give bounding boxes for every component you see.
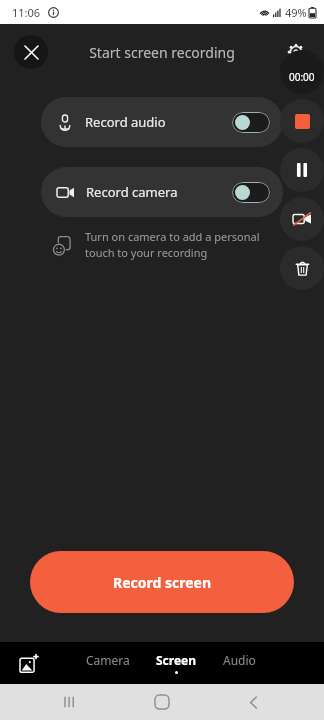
button[interactable]: Pause bbox=[280, 148, 324, 192]
staticText: Record screen bbox=[113, 573, 212, 592]
button[interactable]: Record camera bbox=[41, 167, 283, 217]
staticText: 49% bbox=[285, 5, 307, 20]
staticText: Camera bbox=[86, 652, 130, 668]
button[interactable]: Record audio bbox=[41, 97, 283, 147]
button[interactable]: Toggle bbox=[232, 182, 270, 203]
button[interactable]: Add media bbox=[14, 648, 44, 678]
button[interactable]: Back bbox=[238, 687, 268, 717]
button[interactable]: Toggle bbox=[232, 112, 270, 133]
button[interactable]: Screen bbox=[154, 650, 199, 676]
button[interactable]: Recents bbox=[56, 687, 86, 717]
button[interactable]: Home bbox=[147, 687, 177, 717]
button[interactable]: Stop recording bbox=[280, 99, 324, 143]
staticText: Record audio bbox=[85, 113, 232, 131]
button[interactable]: Record screen bbox=[30, 551, 294, 613]
button[interactable]: Delete bbox=[280, 246, 324, 290]
button[interactable]: Camera bbox=[84, 650, 132, 676]
button[interactable]: Close bbox=[14, 35, 48, 69]
button[interactable]: Settings bbox=[285, 41, 307, 63]
button[interactable]: Audio bbox=[221, 650, 258, 676]
staticText: Record camera bbox=[86, 183, 232, 201]
staticText: 00:00 bbox=[289, 70, 315, 84]
staticText: 11:06 bbox=[12, 5, 41, 20]
staticText: Audio bbox=[223, 652, 256, 668]
button[interactable]: Turn off camera bbox=[280, 197, 324, 241]
staticText: Start screen recording bbox=[89, 43, 235, 62]
staticText: Turn on camera to add a personal touch t… bbox=[85, 229, 274, 261]
staticText: Screen bbox=[156, 652, 197, 668]
